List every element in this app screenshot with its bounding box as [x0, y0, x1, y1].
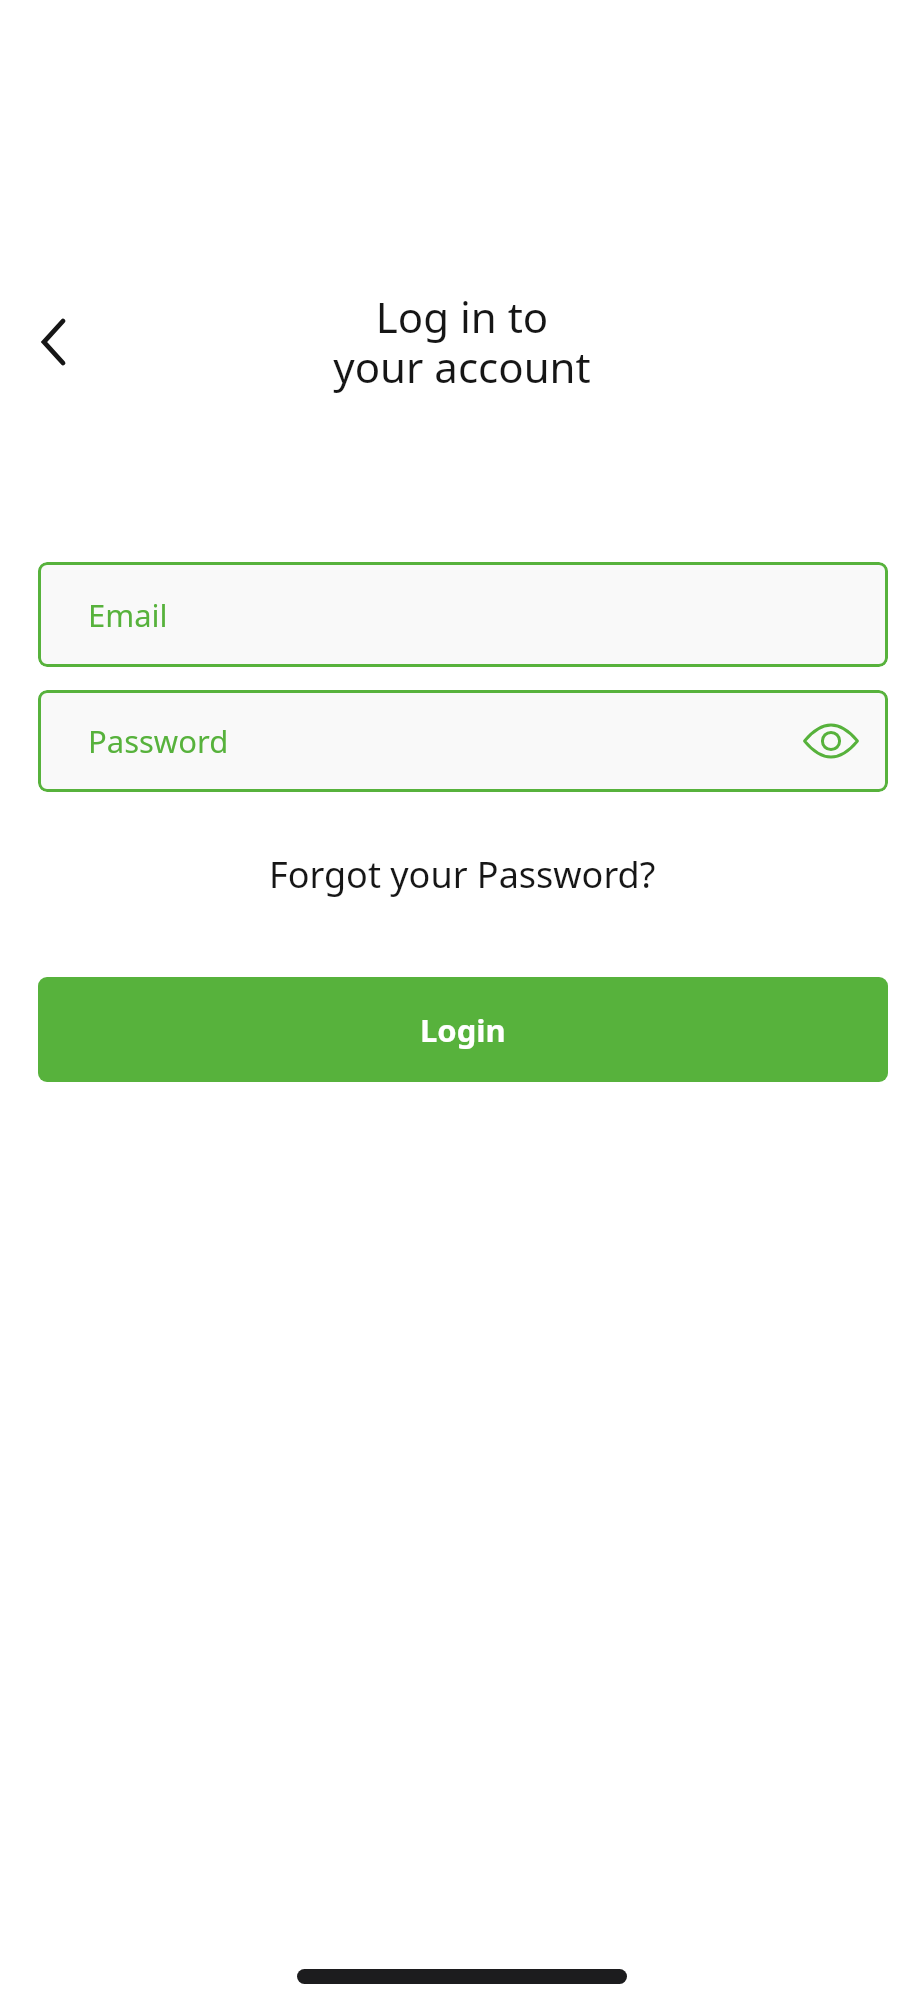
- button[interactable]: Email: [38, 562, 888, 667]
- button[interactable]: [803, 721, 859, 761]
- staticText: Password: [88, 720, 229, 762]
- button[interactable]: Login: [38, 977, 888, 1082]
- button[interactable]: Password: [38, 690, 888, 792]
- staticText: Log in to your account: [0, 288, 924, 396]
- staticText: Email: [88, 594, 168, 636]
- button[interactable]: Forgot your Password?: [269, 850, 656, 898]
- staticText: Login: [420, 1009, 506, 1051]
- button[interactable]: [18, 298, 90, 386]
